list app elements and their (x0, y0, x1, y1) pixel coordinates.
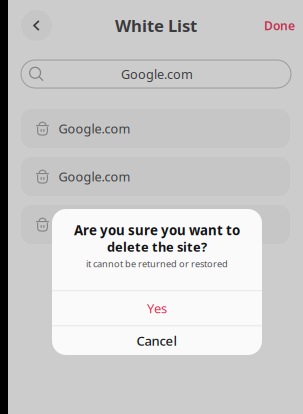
button[interactable]: Done (264, 17, 295, 34)
staticText: Are you sure you want to (74, 221, 240, 239)
button[interactable]: Google.com (21, 109, 290, 148)
staticText: White List (115, 14, 197, 37)
staticText: Google.com (58, 168, 130, 185)
button[interactable]: Yes (52, 291, 262, 325)
button[interactable]: Google.com (21, 205, 290, 244)
staticText: Google.com (58, 120, 130, 137)
staticText: Yes (147, 299, 167, 317)
button[interactable]: Back (21, 10, 52, 41)
button[interactable]: Google.com (21, 157, 290, 196)
staticText: Cancel (136, 332, 177, 350)
staticText: Google.com (58, 216, 130, 233)
staticText: delete the site? (107, 238, 207, 255)
staticText: Google.com (121, 65, 193, 83)
button[interactable]: Cancel (52, 326, 262, 355)
staticText: Done (264, 17, 295, 34)
staticText: it cannot be returned or restored (86, 257, 228, 270)
